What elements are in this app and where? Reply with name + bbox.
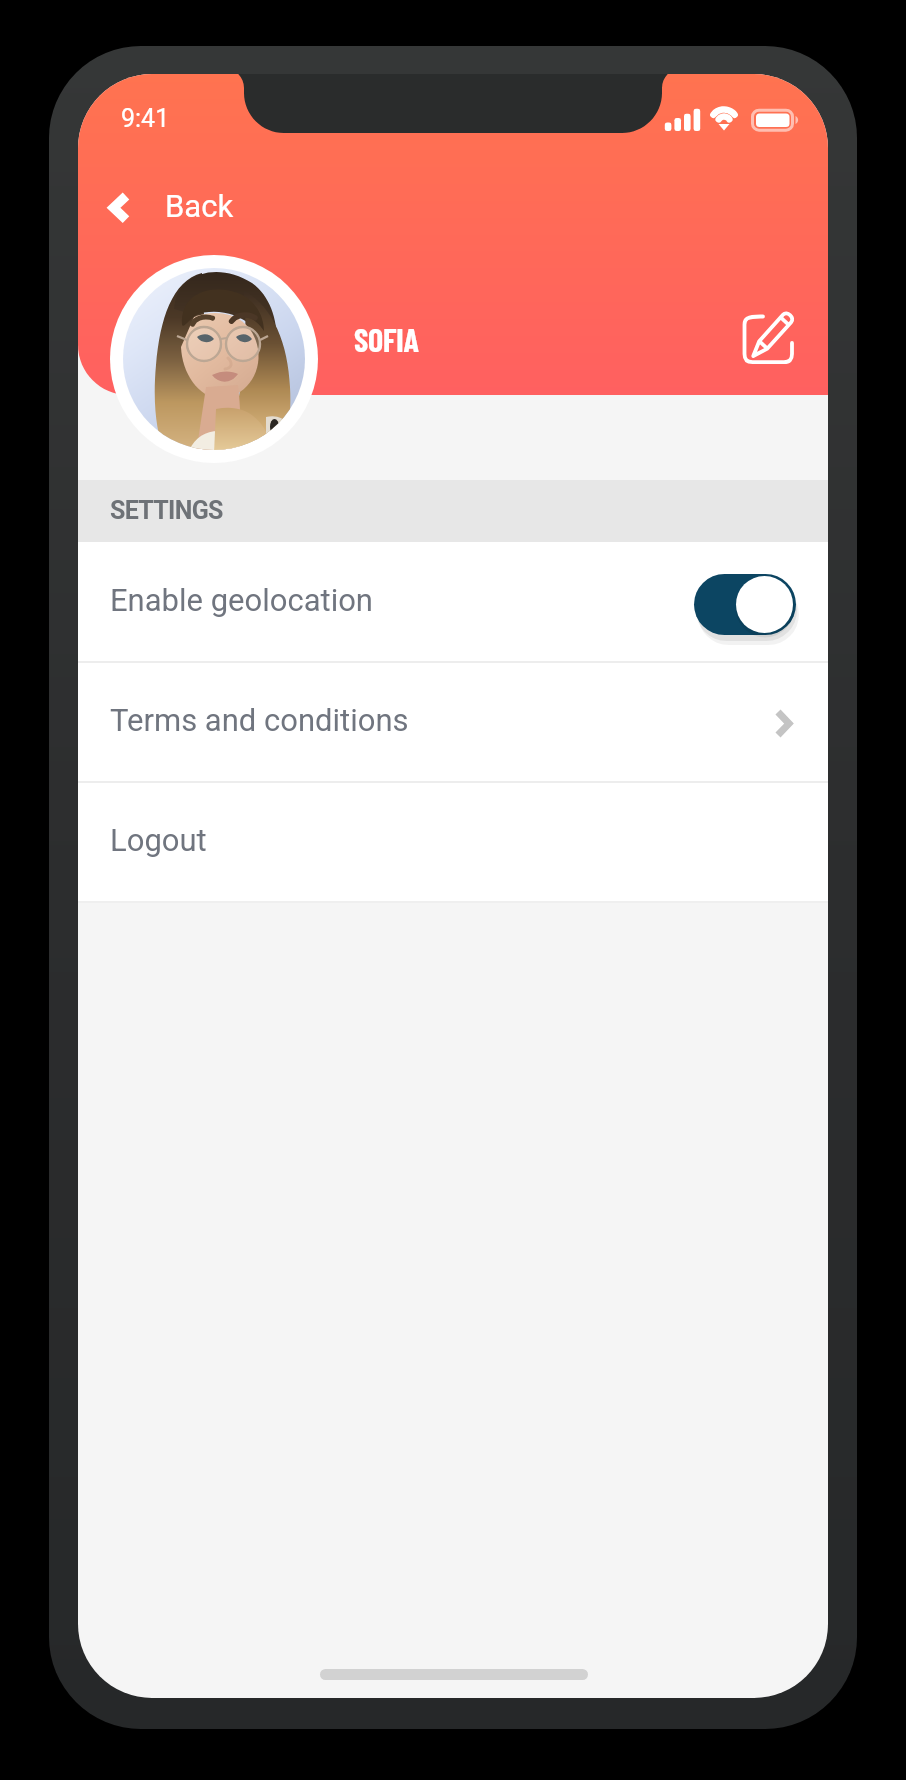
staticText: Logout	[110, 822, 207, 858]
staticText: SETTINGS	[110, 496, 223, 525]
staticText: Back	[165, 188, 234, 224]
button[interactable]: Edit profile	[726, 298, 810, 382]
staticText: SOFIA	[354, 320, 419, 358]
button[interactable]: Logout	[78, 782, 828, 902]
staticText: Enable geolocation	[110, 582, 373, 618]
staticText: Terms and conditions	[110, 702, 409, 738]
button[interactable]: Enable geolocation	[78, 542, 828, 662]
staticText: 9:41	[121, 104, 170, 133]
button[interactable]: Terms and conditions	[78, 662, 828, 782]
button[interactable]: Back	[96, 176, 246, 238]
